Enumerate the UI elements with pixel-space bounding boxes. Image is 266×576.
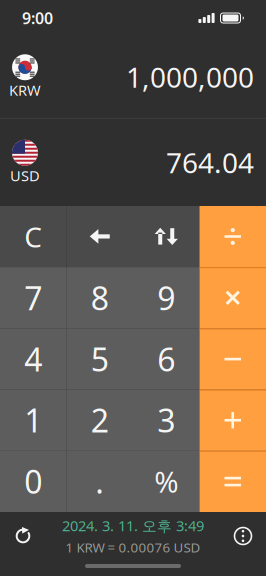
staticText: . (95, 460, 104, 503)
button[interactable]: % (133, 451, 199, 512)
staticText: C (24, 218, 42, 255)
button[interactable]: 8 (66, 267, 133, 328)
staticText: 2024. 3. 11. 오후 3:49 (62, 516, 204, 535)
staticText: 2 (91, 399, 109, 441)
staticText: 7 (24, 277, 42, 319)
button[interactable]: 2 (66, 390, 133, 451)
button[interactable]: More options (220, 514, 266, 558)
staticText: 8 (91, 277, 109, 319)
staticText: 0 (24, 460, 42, 503)
staticText: 1 KRW = 0.00076 USD (65, 538, 200, 556)
button[interactable]: 5 (66, 328, 133, 390)
staticText: 3 (157, 399, 175, 441)
button[interactable]: Backspace (66, 206, 133, 267)
staticText: 764.04 (166, 144, 254, 181)
button[interactable]: . (66, 451, 133, 512)
staticText: % (154, 462, 178, 501)
button[interactable]: 6 (133, 328, 199, 390)
button[interactable]: Multiply (199, 267, 266, 328)
button[interactable]: Minus (199, 328, 266, 390)
staticText: 5 (91, 338, 109, 380)
button[interactable]: Equals (199, 451, 266, 512)
button[interactable]: 3 (133, 390, 199, 451)
button[interactable]: 9 (133, 267, 199, 328)
button[interactable]: 0 (0, 451, 66, 512)
button[interactable]: 1 (0, 390, 66, 451)
button[interactable]: 4 (0, 328, 66, 390)
button[interactable]: 7 (0, 267, 66, 328)
staticText: KRW (9, 80, 41, 100)
button[interactable]: Divide (199, 206, 266, 267)
staticText: 9:00 (22, 7, 53, 29)
button[interactable]: KRW (0, 36, 266, 118)
staticText: USD (10, 166, 40, 185)
button[interactable]: Plus (199, 390, 266, 451)
staticText: 1,000,000 (126, 58, 254, 96)
staticText: 1 (24, 399, 42, 441)
staticText: 4 (24, 338, 42, 380)
staticText: 6 (157, 338, 175, 380)
button[interactable]: C (0, 206, 66, 267)
button[interactable]: Refresh rates (0, 514, 46, 558)
staticText: 9 (157, 277, 175, 319)
button[interactable]: USD (0, 119, 266, 206)
button[interactable]: Swap currencies (133, 206, 199, 267)
